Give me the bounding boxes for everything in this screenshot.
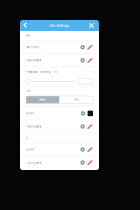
staticText: BODY xyxy=(26,34,30,37)
staticText: Paragraph Spacing xyxy=(26,70,51,73)
button[interactable]: Paragraph Spacing xyxy=(20,67,99,77)
staticText: Site Settings xyxy=(49,23,69,27)
button[interactable]: HOVER xyxy=(59,96,93,104)
staticText: Typography xyxy=(26,125,41,128)
button[interactable]: Typography xyxy=(20,156,99,169)
staticText: HOVER xyxy=(74,99,79,101)
button[interactable]: NORMAL xyxy=(26,96,59,104)
button[interactable]: Color xyxy=(20,143,99,156)
staticText: 1.5 xyxy=(90,70,93,73)
button[interactable]: Back xyxy=(22,20,33,31)
staticText: Text Color xyxy=(26,46,39,49)
button[interactable]: Close xyxy=(86,20,97,31)
staticText: Typography xyxy=(26,59,41,62)
staticText: Typography xyxy=(26,161,41,164)
button[interactable]: Typography xyxy=(20,54,99,67)
staticText: H1 xyxy=(26,137,28,139)
staticText: Color xyxy=(26,112,34,115)
button[interactable]: Text Color xyxy=(20,41,99,53)
staticText: Color xyxy=(26,148,34,151)
staticText: LINK xyxy=(26,90,30,92)
button[interactable]: Typography xyxy=(20,120,99,133)
button[interactable]: Color xyxy=(20,107,99,120)
staticText: NORMAL xyxy=(39,99,46,101)
